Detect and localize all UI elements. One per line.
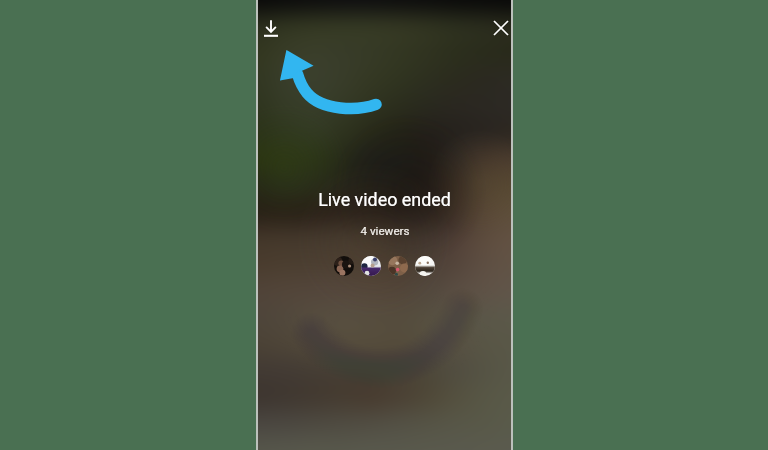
staticText: Live video ended xyxy=(318,189,451,210)
button[interactable]: Viewer xyxy=(334,256,354,276)
button[interactable]: Download xyxy=(258,11,289,47)
button[interactable]: Viewer xyxy=(388,256,408,276)
staticText: 4 viewers xyxy=(360,224,410,238)
button[interactable]: Viewer xyxy=(361,256,381,276)
button[interactable]: Close xyxy=(490,10,511,46)
button[interactable]: Viewer xyxy=(415,256,435,276)
